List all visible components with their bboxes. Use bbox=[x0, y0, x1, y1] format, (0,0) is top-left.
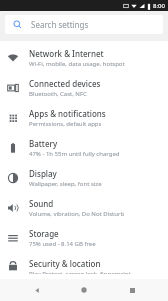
button[interactable]: Recents bbox=[121, 279, 143, 301]
staticText: 75% used - 8.14 GB free bbox=[29, 240, 96, 248]
staticText: Permissions, default apps bbox=[29, 120, 102, 128]
button[interactable]: Sound bbox=[0, 193, 168, 223]
staticText: Display bbox=[29, 168, 57, 179]
staticText: Play Protect, screen lock, fingerprint bbox=[29, 270, 131, 274]
staticText: Connected devices bbox=[29, 78, 101, 89]
button[interactable]: Apps & notifications bbox=[0, 103, 168, 133]
button[interactable]: Battery bbox=[0, 133, 168, 163]
staticText: Bluetooth, Cast, NFC bbox=[29, 90, 87, 98]
staticText: 8:00 bbox=[153, 2, 165, 10]
button[interactable]: Security & location bbox=[0, 253, 168, 279]
staticText: 47% - 1h 55m until fully charged bbox=[29, 150, 120, 158]
button[interactable]: Display bbox=[0, 163, 168, 193]
button[interactable]: Network & Internet bbox=[0, 43, 168, 73]
staticText: Volume, vibration, Do Not Disturb bbox=[29, 210, 125, 218]
button[interactable]: Home bbox=[73, 279, 95, 301]
staticText: Wallpaper, sleep, font size bbox=[29, 180, 102, 188]
staticText: Security & location bbox=[29, 258, 101, 269]
staticText: Search settings bbox=[31, 19, 89, 30]
button[interactable]: Search settings bbox=[5, 15, 163, 34]
button[interactable]: Connected devices bbox=[0, 73, 168, 103]
staticText: Storage bbox=[29, 228, 59, 239]
staticText: Wi-Fi, mobile, data usage, hotspot bbox=[29, 60, 125, 68]
staticText: Battery bbox=[29, 138, 58, 149]
staticText: Sound bbox=[29, 198, 54, 209]
button[interactable]: Storage bbox=[0, 223, 168, 253]
staticText: Apps & notifications bbox=[29, 108, 106, 119]
button[interactable]: Back bbox=[26, 279, 48, 301]
staticText: Network & Internet bbox=[29, 48, 104, 59]
